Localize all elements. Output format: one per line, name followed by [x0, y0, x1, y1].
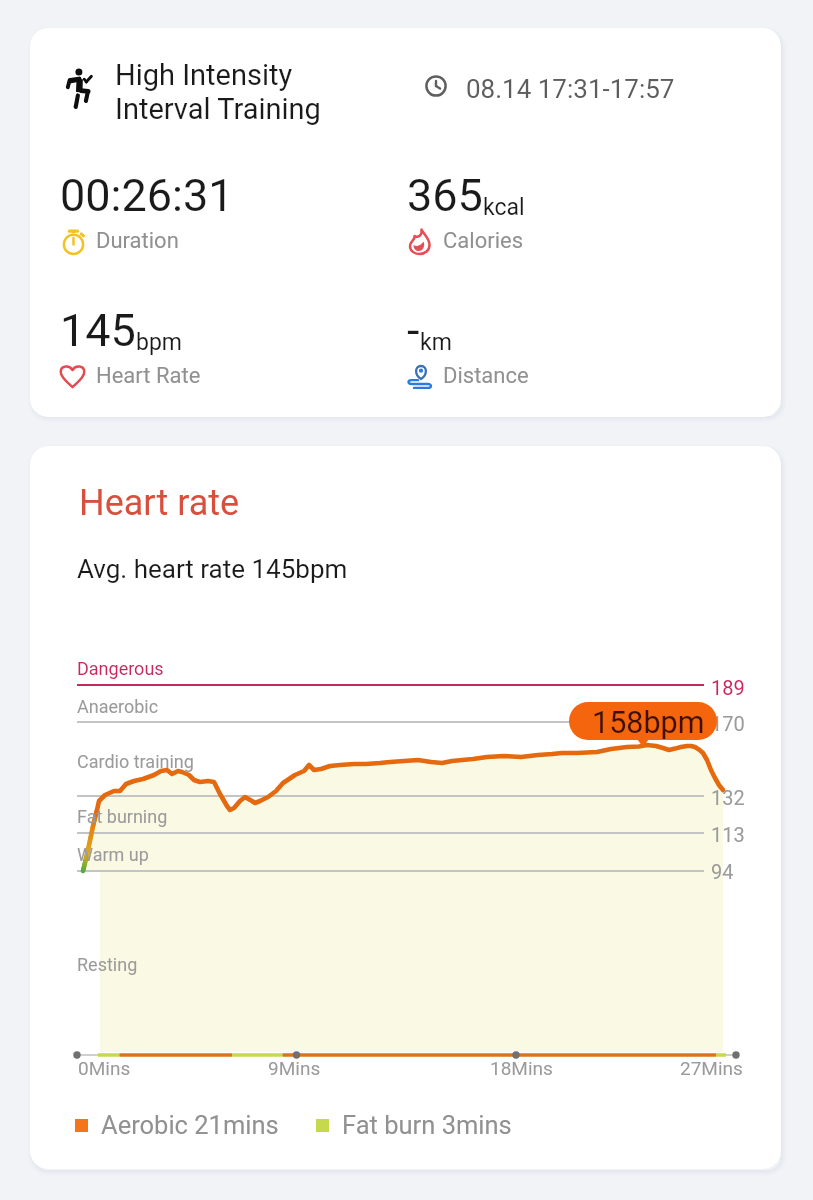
staticText: km [420, 329, 452, 356]
staticText: Dangerous [77, 658, 164, 679]
staticText: 170 [711, 712, 745, 735]
staticText: Warm up [77, 844, 149, 865]
staticText: Calories [443, 228, 524, 254]
staticText: Distance [443, 363, 529, 389]
staticText: 113 [711, 823, 745, 846]
button[interactable]: 158bpm [569, 702, 717, 740]
staticText: kcal [483, 194, 525, 221]
staticText: 158bpm [592, 705, 705, 740]
other: Time [425, 75, 447, 97]
staticText: 9Mins [268, 1057, 321, 1079]
staticText: 08.14 17:31-17:57 [466, 74, 675, 104]
staticText: 94 [711, 860, 734, 883]
staticText: Heart rate [79, 482, 240, 524]
staticText: - [407, 304, 420, 357]
staticText: Interval Training [115, 92, 321, 126]
staticText: High Intensity [115, 58, 293, 92]
staticText: 00:26:31 [60, 169, 234, 222]
staticText: Cardio training [77, 751, 194, 772]
staticText: Aerobic 21mins [101, 1110, 279, 1140]
staticText: Anaerobic [77, 696, 159, 717]
staticText: Resting [77, 954, 138, 975]
staticText: Fat burning [77, 806, 168, 827]
staticText: Duration [96, 228, 179, 254]
staticText: bpm [136, 329, 182, 356]
staticText: 18Mins [490, 1057, 553, 1079]
staticText: Heart Rate [96, 363, 201, 389]
staticText: 145 [60, 304, 136, 357]
staticText: 365 [407, 169, 483, 222]
staticText: 0Mins [78, 1057, 131, 1079]
staticText: Avg. heart rate 145bpm [77, 554, 348, 584]
staticText: Fat burn 3mins [342, 1110, 512, 1140]
staticText: 27Mins [680, 1057, 743, 1079]
button[interactable]: Running workout [30, 28, 781, 417]
staticText: 132 [711, 786, 745, 809]
other: Running workout [63, 63, 95, 113]
staticText: 189 [711, 676, 745, 699]
